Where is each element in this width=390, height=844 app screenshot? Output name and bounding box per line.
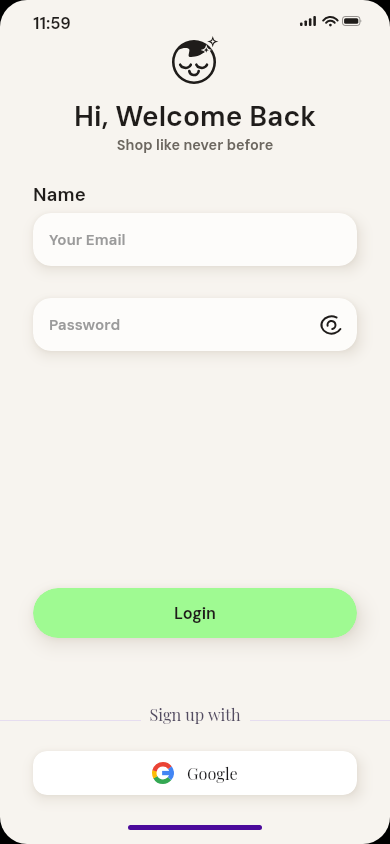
button[interactable]: Password (33, 298, 357, 351)
staticText: Your Email (49, 230, 126, 250)
staticText: Google (187, 762, 238, 784)
staticText: Sign up with (0, 703, 390, 725)
staticText: Login (174, 603, 217, 624)
button[interactable]: Login (33, 588, 357, 638)
staticText: Name (33, 183, 86, 207)
staticText: Password (49, 315, 121, 335)
button[interactable]: Toggle password visibility (316, 310, 346, 340)
button[interactable]: Google (33, 751, 357, 795)
staticText: 11:59 (33, 13, 71, 35)
staticText: Hi, Welcome Back (0, 98, 390, 134)
button[interactable]: Your Email (33, 213, 357, 266)
staticText: Shop like never before (0, 136, 390, 155)
